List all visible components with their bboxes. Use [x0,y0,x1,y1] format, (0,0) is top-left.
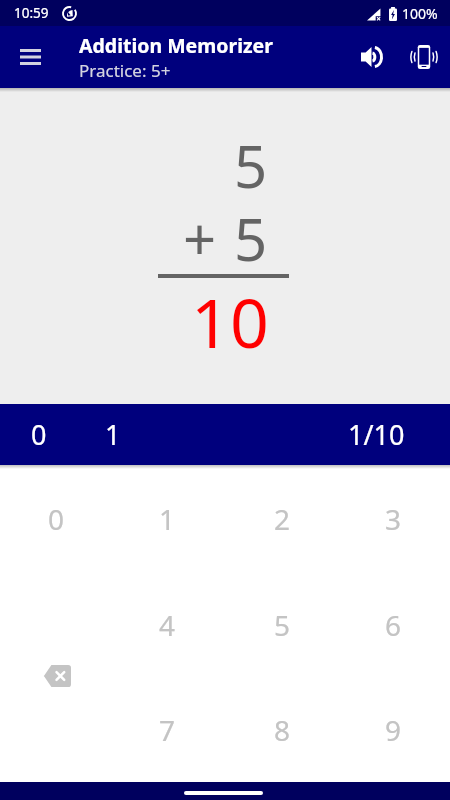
button[interactable]: 6 [341,575,446,675]
button[interactable]: 9 [341,680,446,780]
button[interactable]: Backspace [4,626,109,726]
staticText: 0 [31,416,47,453]
staticText: 5 [274,606,291,644]
button[interactable]: 7 [115,680,220,780]
staticText: 1 [105,416,121,453]
button[interactable]: 8 [230,680,335,780]
staticText: 9 [385,711,402,749]
staticText: 8 [274,711,291,749]
button[interactable]: 2 [230,469,335,569]
button[interactable]: 0 [4,469,109,569]
staticText: 6 [385,606,402,644]
staticText: 7 [159,711,176,749]
staticText: 2 [274,500,291,538]
staticText: 100% [402,4,438,23]
button[interactable]: Sound [344,29,398,85]
button[interactable]: Open navigation menu [0,29,61,85]
staticText: 5 [234,126,268,205]
staticText: 3 [385,500,402,538]
button[interactable]: Vibrate [398,29,450,85]
staticText: 0 [48,500,65,538]
button[interactable]: 5 [230,575,335,675]
button[interactable]: 1 [115,469,220,569]
button[interactable]: 3 [341,469,446,569]
staticText: 5 [234,199,268,278]
staticText: 10:59 [14,4,49,22]
staticText: 1 [159,500,176,538]
staticText: Addition Memorizer [79,32,273,59]
staticText: 10 [191,275,269,368]
staticText: 1/10 [348,416,405,453]
button[interactable]: 4 [115,575,220,675]
staticText: 4 [159,606,176,644]
staticText: Practice: 5+ [79,59,171,82]
staticText: + [183,199,217,278]
